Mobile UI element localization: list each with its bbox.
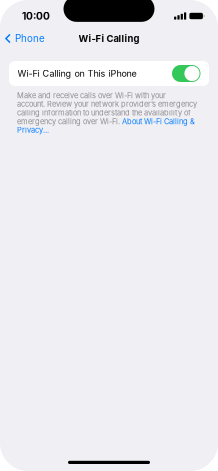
staticText: Wi-Fi Calling on This iPhone	[17, 68, 136, 79]
button[interactable]: Wi-Fi Calling on This iPhone	[9, 61, 209, 86]
button[interactable]: Phone	[0, 28, 51, 49]
staticText: 10:00	[22, 10, 50, 22]
staticText: Make and receive calls over Wi-Fi with y…	[17, 91, 197, 135]
staticText: Phone	[15, 33, 45, 44]
staticText: Wi-Fi Calling	[78, 33, 139, 44]
